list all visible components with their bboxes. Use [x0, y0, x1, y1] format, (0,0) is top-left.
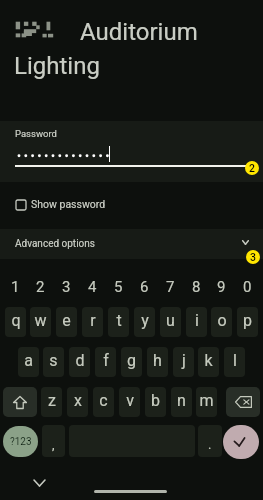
staticText: q [11, 311, 21, 330]
button[interactable]: 2 [245, 161, 259, 175]
button[interactable]: 9 [211, 274, 232, 300]
button[interactable]: u [160, 307, 181, 337]
staticText: , [52, 437, 55, 452]
button[interactable]: . [198, 425, 222, 457]
staticText: t [116, 311, 122, 330]
button[interactable]: j [173, 347, 194, 377]
staticText: a [24, 351, 33, 370]
staticText: Show password [31, 198, 106, 210]
button[interactable]: v [119, 387, 140, 417]
button[interactable]: z [41, 387, 62, 417]
staticText: d [75, 351, 85, 370]
button[interactable]: 4 [82, 274, 103, 300]
staticText: h [153, 351, 162, 370]
button[interactable]: h [147, 347, 168, 377]
staticText: s [49, 351, 58, 370]
staticText: r [90, 311, 96, 330]
staticText: e [62, 311, 71, 330]
staticText: 0 [243, 278, 252, 296]
button[interactable]: d [69, 347, 90, 377]
staticText: 2 [249, 162, 255, 174]
button[interactable]: k [198, 347, 219, 377]
staticText: Advanced options [15, 238, 95, 250]
staticText: Lighting [14, 52, 100, 80]
staticText: j [182, 351, 186, 370]
button[interactable] [0, 121, 263, 182]
button[interactable]: e [56, 307, 77, 337]
button[interactable]: q [5, 307, 26, 337]
staticText: Auditorium [80, 18, 198, 46]
button[interactable]: i [186, 307, 207, 337]
staticText: m [199, 391, 214, 410]
button[interactable]: Hide keyboard [28, 474, 50, 492]
staticText: c [99, 391, 108, 410]
button[interactable]: r [82, 307, 103, 337]
button[interactable]: a [18, 347, 39, 377]
button[interactable]: l [224, 347, 245, 377]
button[interactable]: 8 [186, 274, 207, 300]
staticText: 3 [250, 251, 256, 263]
button[interactable]: m [196, 387, 217, 417]
button[interactable]: ?123 [3, 426, 38, 457]
staticText: 2 [36, 278, 45, 296]
button[interactable]: 3 [56, 274, 77, 300]
button[interactable]: 5 [108, 274, 129, 300]
staticText: p [243, 311, 252, 330]
staticText: 9 [217, 278, 226, 296]
staticText: 6 [140, 278, 149, 296]
button[interactable]: 2 [30, 274, 51, 300]
button[interactable]: 1 [5, 274, 26, 300]
staticText: o [217, 311, 227, 330]
staticText: w [34, 311, 47, 330]
button[interactable]: Enter [223, 425, 259, 459]
button[interactable]: f [95, 347, 116, 377]
staticText: ?123 [10, 436, 32, 448]
button[interactable]: x [67, 387, 88, 417]
button[interactable]: t [108, 307, 129, 337]
button[interactable]: 0 [237, 274, 258, 300]
button[interactable]: 3 [246, 250, 260, 264]
staticText: b [151, 391, 160, 410]
staticText: l [233, 351, 237, 370]
staticText: v [126, 391, 134, 410]
staticText: g [127, 351, 136, 370]
button[interactable]: Backspace [226, 387, 260, 417]
staticText: 1 [11, 278, 20, 296]
staticText: 7 [166, 278, 175, 296]
staticText: x [74, 391, 82, 410]
staticText: Password [15, 128, 57, 139]
button[interactable]: Advanced options [0, 229, 263, 259]
button[interactable]: o [211, 307, 232, 337]
button[interactable]: Shift [3, 387, 37, 417]
staticText: n [177, 391, 186, 410]
button[interactable]: b [145, 387, 166, 417]
button[interactable]: n [171, 387, 192, 417]
staticText: 5 [114, 278, 123, 296]
button[interactable]: c [93, 387, 114, 417]
button[interactable]: 7 [160, 274, 181, 300]
staticText: 3 [62, 278, 71, 296]
button[interactable]: s [43, 347, 64, 377]
staticText: . [208, 437, 212, 452]
staticText: u [166, 311, 175, 330]
staticText: z [48, 391, 56, 410]
button[interactable]: g [121, 347, 142, 377]
button[interactable]: 6 [134, 274, 155, 300]
staticText: k [204, 351, 213, 370]
button[interactable]: y [134, 307, 155, 337]
staticText: i [195, 311, 199, 330]
button[interactable]: w [30, 307, 51, 337]
staticText: 8 [192, 278, 201, 296]
button[interactable]: , [42, 425, 65, 457]
button[interactable]: Show password [8, 193, 118, 217]
button[interactable]: p [237, 307, 258, 337]
staticText: 4 [88, 278, 97, 296]
staticText: f [103, 351, 109, 370]
staticText: y [141, 311, 149, 330]
